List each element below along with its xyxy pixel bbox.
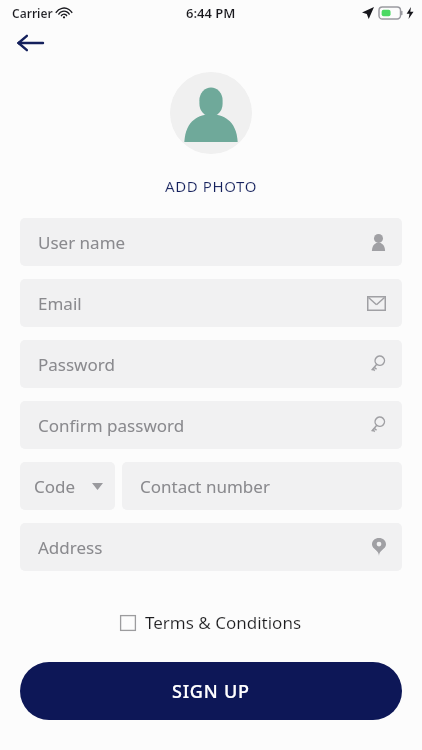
staticText: User name bbox=[38, 231, 371, 254]
button[interactable]: SIGN UP bbox=[20, 662, 402, 720]
staticText: Carrier bbox=[12, 5, 53, 21]
button[interactable]: Add photo bbox=[170, 72, 252, 154]
staticText: Password bbox=[38, 353, 368, 376]
staticText: SIGN UP bbox=[172, 679, 250, 704]
staticText: 6:44 PM bbox=[186, 4, 236, 22]
button[interactable]: User name bbox=[20, 218, 402, 266]
button[interactable]: Email bbox=[20, 279, 402, 327]
staticText: Code bbox=[34, 475, 92, 498]
button[interactable]: Code bbox=[20, 462, 115, 510]
staticText: Address bbox=[38, 536, 372, 559]
button[interactable]: Address bbox=[20, 523, 402, 571]
button[interactable]: ADD PHOTO bbox=[165, 176, 257, 196]
staticText: Contact number bbox=[140, 475, 270, 498]
button[interactable]: Confirm password bbox=[20, 401, 402, 449]
staticText: Confirm password bbox=[38, 414, 368, 437]
button[interactable]: Contact number bbox=[122, 462, 402, 510]
button[interactable]: Terms & Conditions bbox=[116, 607, 306, 638]
button[interactable]: Password bbox=[20, 340, 402, 388]
button[interactable]: Back bbox=[10, 26, 50, 60]
staticText: Email bbox=[38, 292, 367, 315]
staticText: Terms & Conditions bbox=[145, 611, 302, 634]
